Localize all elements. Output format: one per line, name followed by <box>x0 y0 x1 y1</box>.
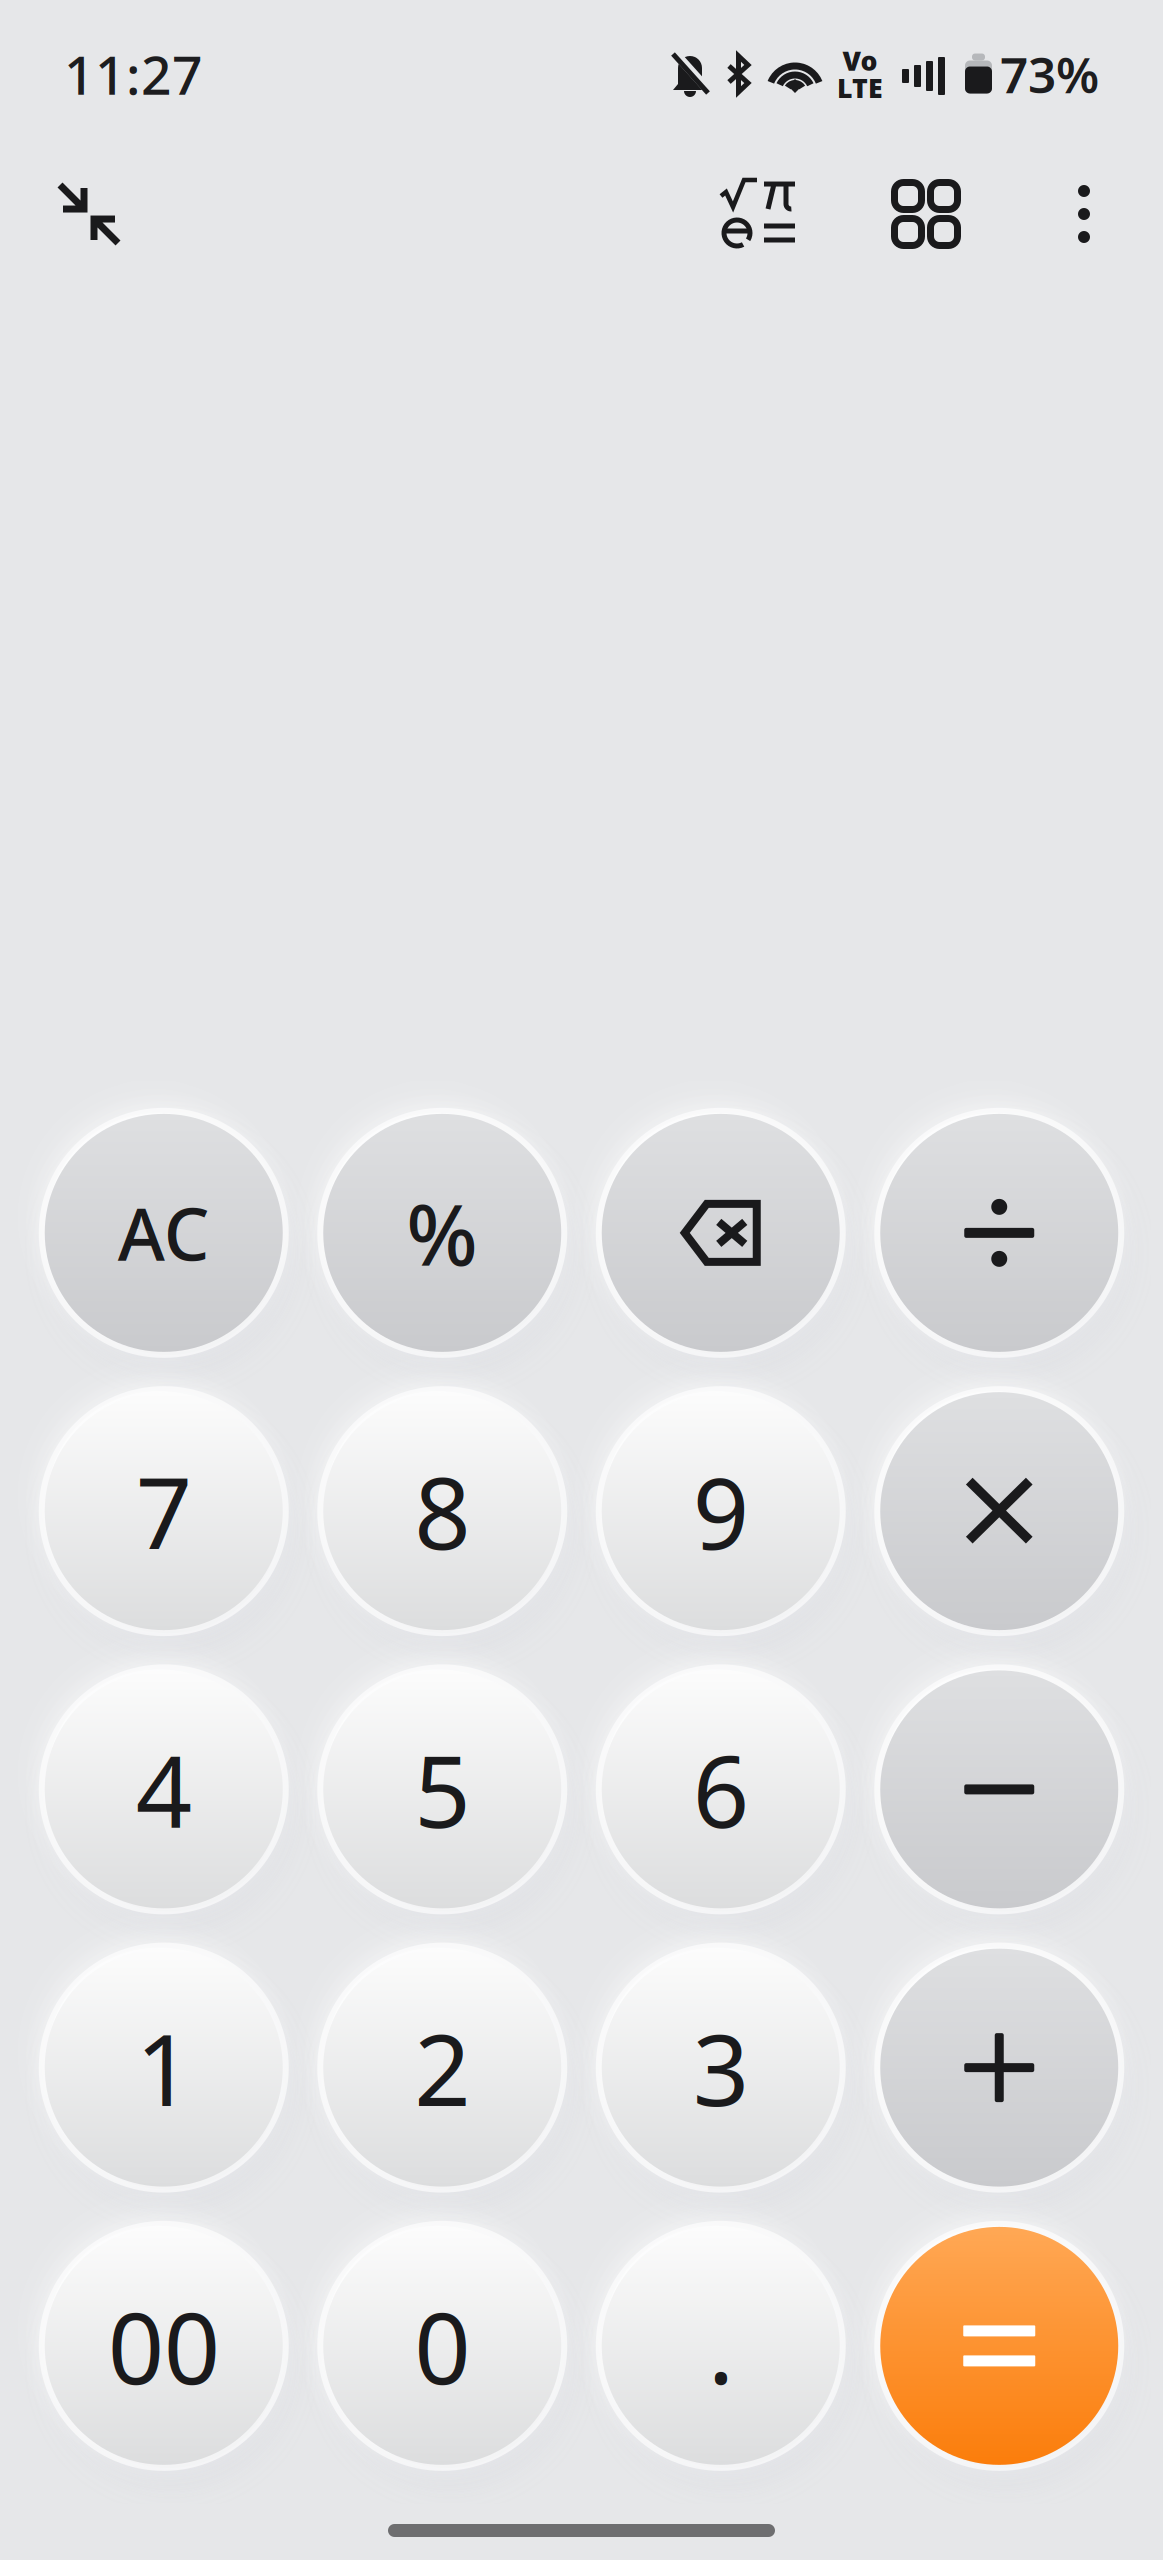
button[interactable] <box>581 1094 860 1372</box>
button[interactable]: AC <box>24 1094 303 1372</box>
staticText: 2 <box>414 2002 470 2133</box>
staticText: 00 <box>108 2280 220 2411</box>
button[interactable]: 1 <box>24 1928 303 2207</box>
staticText: 8 <box>414 1446 470 1577</box>
button[interactable]: % <box>303 1094 581 1372</box>
button[interactable]: 00 <box>24 2207 303 2485</box>
staticText: 73% <box>1000 41 1099 107</box>
staticText: . <box>708 2280 734 2411</box>
staticText: 11:27 <box>64 39 203 109</box>
button[interactable] <box>860 1650 1138 1928</box>
button[interactable]: 3 <box>581 1928 860 2207</box>
button[interactable]: 0 <box>303 2207 581 2485</box>
button[interactable]: 8 <box>303 1372 581 1650</box>
button[interactable] <box>860 2207 1138 2485</box>
button[interactable]: 2 <box>303 1928 581 2207</box>
button[interactable]: . <box>581 2207 860 2485</box>
staticText: 3 <box>693 2002 749 2133</box>
staticText: 1 <box>136 2002 192 2133</box>
button[interactable]: Collapse <box>34 159 144 269</box>
staticText: 9 <box>693 1446 749 1577</box>
staticText: 4 <box>136 1724 192 1855</box>
button[interactable]: 9 <box>581 1372 860 1650</box>
button[interactable]: 4 <box>24 1650 303 1928</box>
staticText: 0 <box>414 2280 470 2411</box>
button[interactable]: 6 <box>581 1650 860 1928</box>
button[interactable]: 5 <box>303 1650 581 1928</box>
staticText: 6 <box>693 1724 749 1855</box>
staticText: AC <box>118 1185 210 1281</box>
staticText: Vo <box>842 43 877 78</box>
staticText: 7 <box>136 1446 192 1577</box>
button[interactable]: 7 <box>24 1372 303 1650</box>
button[interactable]: Scientific calculator <box>703 159 813 269</box>
staticText: % <box>406 1177 478 1289</box>
staticText: LTE <box>837 70 883 105</box>
button[interactable] <box>860 1928 1138 2207</box>
button[interactable]: Unit converter <box>871 159 981 269</box>
staticText: 5 <box>414 1724 470 1855</box>
button[interactable] <box>860 1372 1138 1650</box>
button[interactable] <box>860 1094 1138 1372</box>
button[interactable]: More options <box>1039 159 1129 269</box>
